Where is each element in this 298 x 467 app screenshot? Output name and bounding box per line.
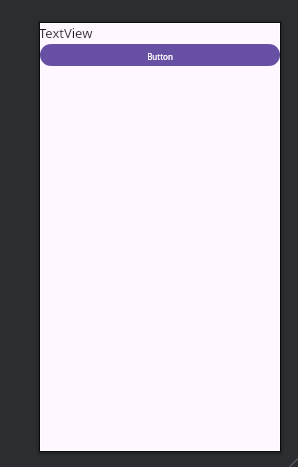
staticText: TextView <box>39 24 93 42</box>
staticText: Button <box>147 51 173 62</box>
button[interactable]: Button <box>40 44 280 66</box>
